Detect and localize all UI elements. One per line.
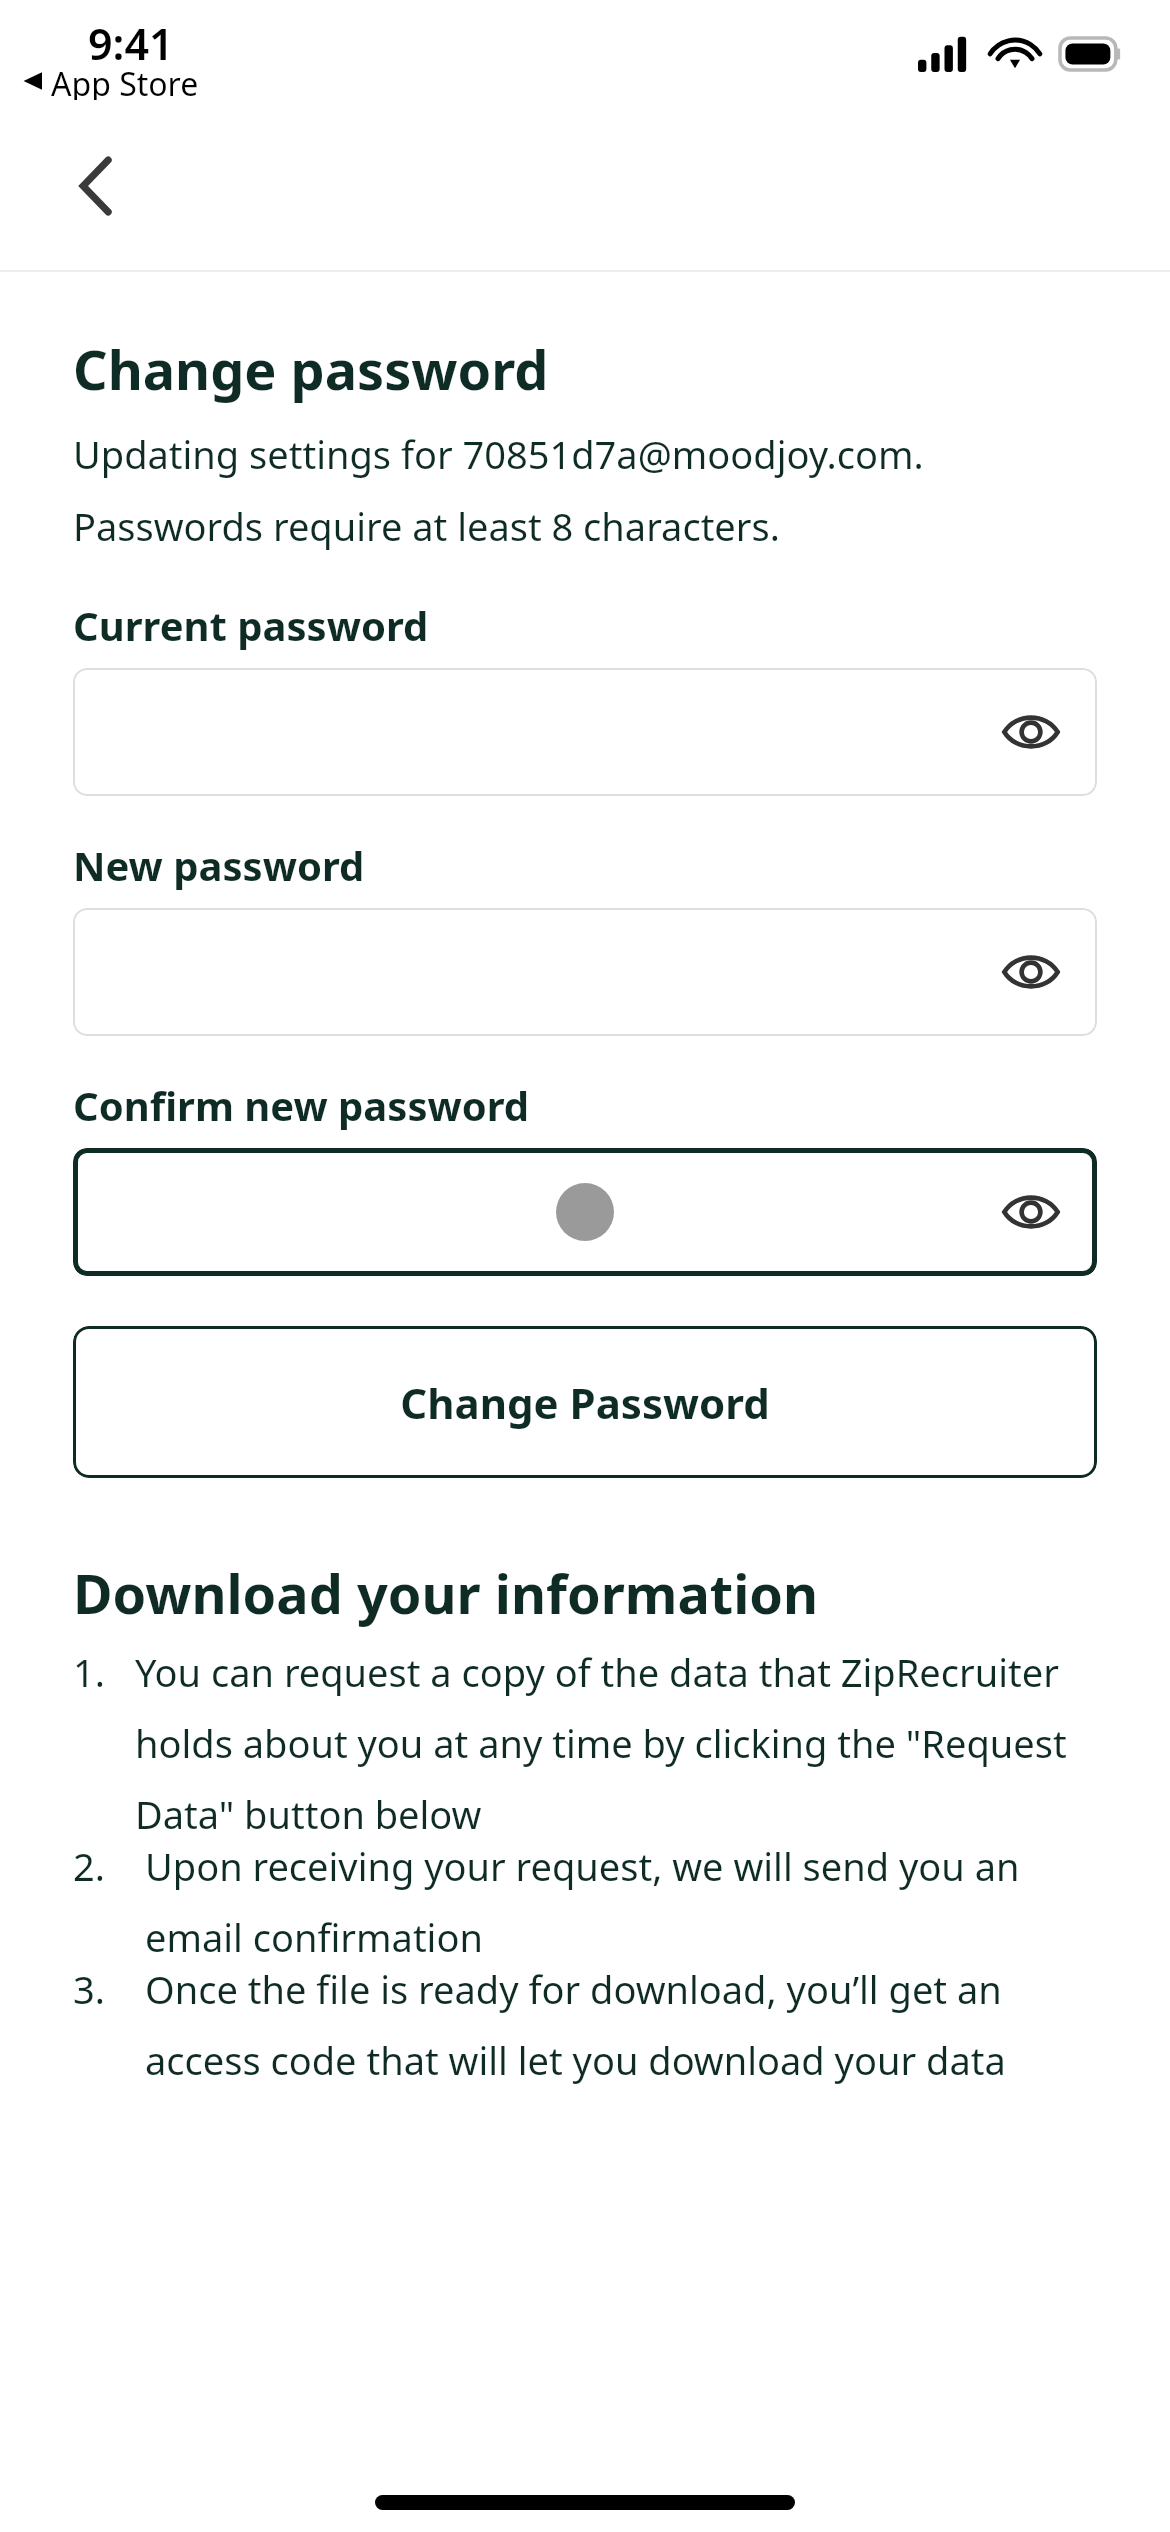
button[interactable]: Show password <box>995 936 1067 1008</box>
staticText: Change Password <box>400 1374 770 1431</box>
staticText: Confirm new password <box>73 1078 530 1132</box>
staticText: You can request a copy of the data that … <box>135 1646 1097 1840</box>
button[interactable]: Show password <box>995 1176 1067 1248</box>
staticText: New password <box>73 838 365 892</box>
staticText: Change password <box>73 332 549 406</box>
staticText: 1. <box>73 1646 135 1698</box>
button[interactable]: Show password <box>73 668 1097 796</box>
staticText: Current password <box>73 598 429 652</box>
button[interactable]: App Store <box>22 62 199 100</box>
button[interactable]: Show password <box>995 696 1067 768</box>
staticText: 2. <box>73 1840 145 1892</box>
staticText: 3. <box>73 1963 145 2015</box>
staticText: Once the file is ready for download, you… <box>145 1963 1097 2086</box>
staticText: App Store <box>51 62 199 100</box>
staticText: Upon receiving your request, we will sen… <box>145 1840 1097 1963</box>
button[interactable]: Back <box>48 138 144 234</box>
staticText: Updating settings for 70851d7a@moodjoy.c… <box>73 428 1097 552</box>
staticText: Download your information <box>73 1556 819 1630</box>
staticText: 9:41 <box>88 14 174 73</box>
button[interactable]: Show password <box>73 908 1097 1036</box>
button[interactable]: Show password <box>73 1148 1097 1276</box>
button[interactable]: Change Password <box>73 1326 1097 1478</box>
